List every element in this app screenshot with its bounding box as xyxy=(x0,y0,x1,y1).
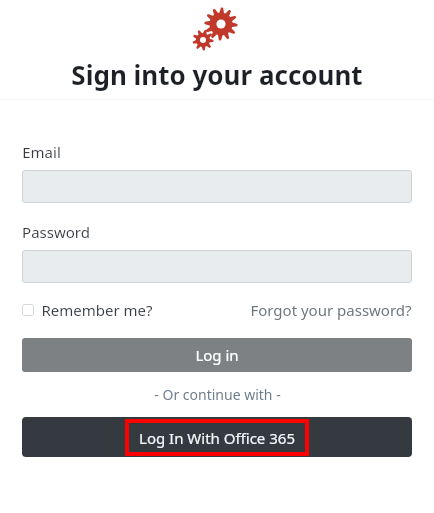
button[interactable]: Password xyxy=(22,250,412,283)
staticText: Sign into your account xyxy=(71,57,363,92)
button[interactable]: Email xyxy=(22,170,412,203)
button[interactable]: Log In With Office 365 xyxy=(22,417,412,457)
staticText: Forgot your password? xyxy=(250,300,412,320)
button[interactable]: Forgot your password? xyxy=(250,300,412,320)
staticText: - Or continue with - xyxy=(154,385,281,404)
other: Logo xyxy=(0,0,434,56)
staticText: Log in xyxy=(195,345,239,365)
staticText: Remember me? xyxy=(41,300,153,320)
staticText: Email xyxy=(22,142,61,162)
button[interactable]: Remember me? xyxy=(22,300,153,320)
staticText: Password xyxy=(22,222,90,242)
button[interactable]: Log in xyxy=(22,338,412,372)
staticText: Log In With Office 365 xyxy=(139,428,295,448)
